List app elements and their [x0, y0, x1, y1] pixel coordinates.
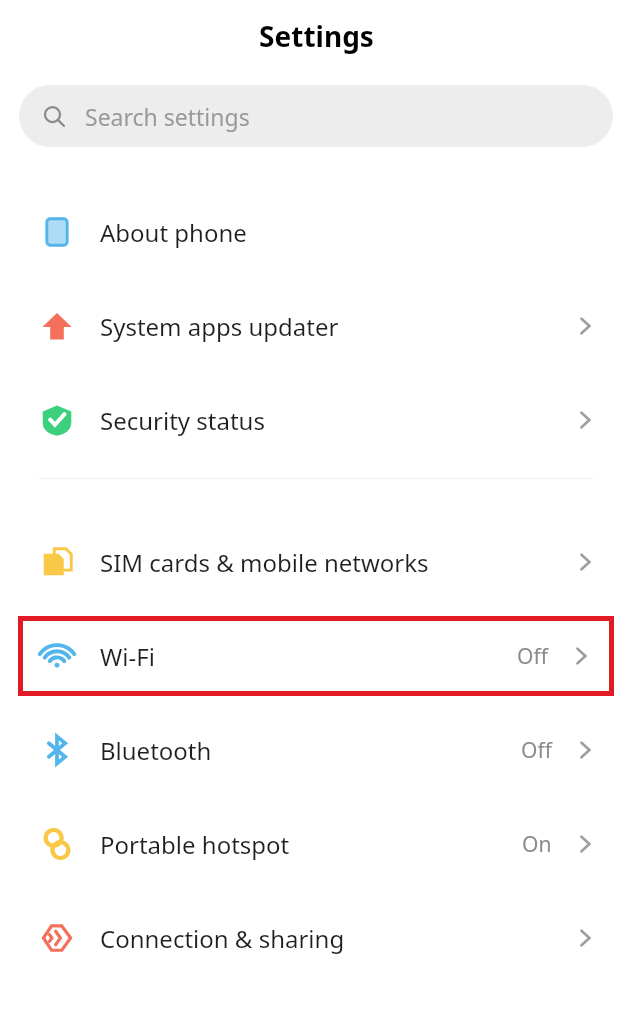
button[interactable]: Bluetooth	[0, 703, 632, 797]
staticText: Wi-Fi	[100, 640, 155, 673]
staticText: Connection & sharing	[100, 922, 345, 955]
button[interactable]: System apps updater	[0, 279, 632, 373]
staticText: Settings	[259, 17, 374, 55]
staticText: System apps updater	[100, 310, 339, 343]
staticText: Off	[521, 736, 552, 765]
staticText: Security status	[100, 404, 265, 437]
staticText: Off	[517, 642, 548, 671]
staticText: Search settings	[85, 101, 250, 132]
button[interactable]: Portable hotspot	[0, 797, 632, 891]
button[interactable]: Search settings	[19, 85, 613, 147]
staticText: Bluetooth	[100, 734, 212, 767]
button[interactable]: SIM cards & mobile networks	[0, 515, 632, 609]
button[interactable]: Security status	[0, 373, 632, 467]
staticText: On	[522, 830, 552, 859]
button[interactable]: Wi-Fi	[18, 616, 614, 696]
staticText: Portable hotspot	[100, 828, 290, 861]
staticText: SIM cards & mobile networks	[100, 546, 429, 579]
button[interactable]: Connection & sharing	[0, 891, 632, 985]
button[interactable]: About phone	[0, 185, 632, 279]
staticText: About phone	[100, 216, 247, 249]
